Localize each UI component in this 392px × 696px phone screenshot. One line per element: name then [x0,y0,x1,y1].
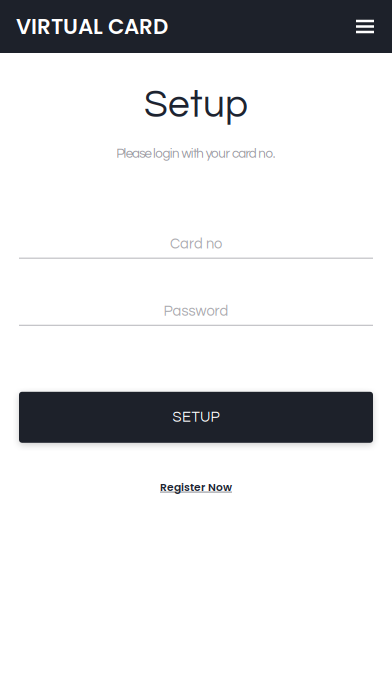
button[interactable]: Menu [348,9,382,43]
staticText: Please login with your card no. [116,147,276,160]
button[interactable]: Register Now [160,480,232,495]
button[interactable]: SETUP [19,392,373,443]
staticText: Card no [170,237,222,252]
staticText: Password [163,304,228,319]
staticText: SETUP [172,410,219,425]
staticText: VIRTUAL CARD [16,12,168,41]
staticText: Setup [144,85,248,125]
staticText: Register Now [160,480,232,495]
